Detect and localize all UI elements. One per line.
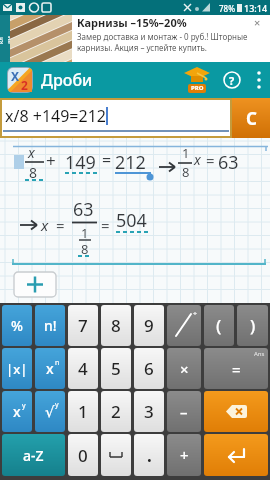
button[interactable]: 6 bbox=[134, 348, 164, 389]
staticText: 8 bbox=[111, 314, 121, 337]
staticText: + bbox=[180, 445, 189, 465]
staticText: 13:14 bbox=[244, 2, 268, 14]
staticText: C bbox=[246, 107, 257, 130]
staticText: y bbox=[55, 400, 59, 410]
staticText: Реклама bbox=[0, 34, 21, 44]
button[interactable]: 5 bbox=[101, 348, 131, 389]
button[interactable]: 4 bbox=[68, 348, 98, 389]
button[interactable]: ? bbox=[222, 70, 242, 90]
staticText: 2 bbox=[21, 77, 28, 93]
staticText: ? bbox=[229, 73, 235, 88]
staticText: x/8 +149=212 bbox=[5, 105, 106, 127]
staticText: 3 bbox=[144, 400, 154, 423]
button[interactable]: ( bbox=[204, 305, 234, 346]
staticText: Дроби bbox=[41, 69, 93, 91]
staticText: a-Z bbox=[23, 446, 44, 465]
staticText: 78% bbox=[219, 3, 235, 14]
staticText: y bbox=[22, 401, 26, 411]
button[interactable] bbox=[204, 434, 268, 476]
staticText: = bbox=[206, 150, 215, 170]
staticText: 2 bbox=[111, 400, 121, 423]
staticText: = bbox=[232, 359, 241, 379]
button[interactable] bbox=[204, 391, 268, 432]
staticText: 0 bbox=[78, 444, 88, 467]
staticText: 149 bbox=[65, 150, 96, 175]
staticText: 1 bbox=[78, 400, 88, 423]
staticText: 8 bbox=[29, 163, 38, 182]
button[interactable]: 2 bbox=[101, 391, 131, 432]
staticText: = bbox=[56, 215, 65, 235]
button[interactable]: PRO bbox=[182, 65, 212, 95]
button[interactable]: ÷ bbox=[167, 305, 201, 346]
staticText: + bbox=[46, 149, 56, 172]
staticText: . bbox=[147, 444, 152, 467]
button[interactable]: x bbox=[2, 391, 32, 432]
staticText: n! bbox=[44, 316, 57, 335]
staticText: 8 bbox=[182, 163, 190, 181]
staticText: 6 bbox=[144, 357, 154, 380]
staticText: 8 bbox=[81, 240, 89, 258]
staticText: = bbox=[101, 215, 110, 235]
staticText: 4 bbox=[78, 357, 88, 380]
button[interactable]: C bbox=[232, 98, 270, 138]
staticText: x bbox=[194, 150, 201, 169]
staticText: √ bbox=[45, 403, 55, 420]
staticText: |x| bbox=[6, 360, 28, 378]
staticText: x bbox=[46, 359, 54, 378]
staticText: ) bbox=[250, 314, 256, 337]
button[interactable]: 1 bbox=[68, 391, 98, 432]
button[interactable]: = bbox=[204, 348, 268, 389]
staticText: n bbox=[55, 358, 60, 368]
staticText: 63 bbox=[218, 150, 239, 175]
button[interactable]: 7 bbox=[68, 305, 98, 346]
staticText: – bbox=[180, 402, 188, 422]
button[interactable]: – bbox=[167, 391, 201, 432]
button[interactable]: 8 bbox=[101, 305, 131, 346]
staticText: PRO bbox=[191, 84, 204, 92]
staticText: Карнизы –15%–20% bbox=[77, 15, 187, 30]
staticText: 7 bbox=[78, 314, 88, 337]
staticText: % bbox=[11, 316, 23, 335]
staticText: ÷ bbox=[193, 309, 198, 319]
button[interactable]: 0 bbox=[68, 434, 98, 476]
staticText: × bbox=[254, 15, 261, 30]
staticText: 212 bbox=[115, 150, 146, 175]
button[interactable] bbox=[252, 68, 266, 92]
button[interactable]: |x| bbox=[2, 348, 32, 389]
staticText: X bbox=[11, 68, 20, 84]
staticText: 1 bbox=[182, 144, 190, 162]
button[interactable]: n! bbox=[35, 305, 65, 346]
button[interactable]: a-Z bbox=[2, 434, 65, 476]
button[interactable]: x bbox=[35, 348, 65, 389]
staticText: × bbox=[180, 359, 189, 379]
staticText: 1 bbox=[81, 224, 89, 242]
button[interactable]: 3 bbox=[134, 391, 164, 432]
button[interactable]: × bbox=[167, 348, 201, 389]
staticText: ( bbox=[216, 314, 222, 337]
button[interactable]: . bbox=[134, 434, 164, 476]
staticText: x bbox=[41, 215, 49, 235]
staticText: 9 bbox=[144, 314, 154, 337]
staticText: x bbox=[13, 402, 21, 421]
staticText: = bbox=[102, 149, 112, 171]
button[interactable]: ) bbox=[237, 305, 268, 346]
button[interactable]: % bbox=[2, 305, 32, 346]
button[interactable] bbox=[101, 434, 131, 476]
button[interactable]: √ bbox=[35, 391, 65, 432]
button[interactable]: 9 bbox=[134, 305, 164, 346]
staticText: 504 bbox=[116, 208, 147, 233]
staticText: 63 bbox=[73, 197, 94, 222]
button[interactable]: + bbox=[167, 434, 201, 476]
button[interactable]: X bbox=[7, 67, 33, 93]
staticText: Замер доставка и монтаж - 0 руб.! Шторны… bbox=[77, 31, 248, 53]
staticText: Ans bbox=[254, 350, 265, 358]
button[interactable]: Реклама bbox=[0, 15, 270, 62]
staticText: x bbox=[28, 143, 35, 162]
staticText: 5 bbox=[111, 357, 121, 380]
